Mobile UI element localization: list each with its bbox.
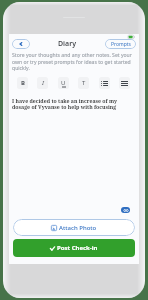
button[interactable]: Text size <box>78 77 89 89</box>
staticText: I <box>42 79 44 87</box>
staticText: Store your thoughts and any other notes.… <box>12 52 136 72</box>
button[interactable]: Attach Photo <box>13 219 135 236</box>
button[interactable]: Italic <box>37 77 48 89</box>
staticText: U <box>61 79 66 87</box>
button[interactable]: Bulleted list <box>99 77 110 89</box>
staticText: Diary <box>58 39 77 49</box>
staticText: T <box>82 79 86 87</box>
button[interactable]: Underline <box>58 77 69 89</box>
button[interactable]: Voice input <box>121 207 130 213</box>
staticText: Attach Photo <box>59 224 97 232</box>
button[interactable]: Bold <box>17 77 28 89</box>
staticText: Post Check-in <box>57 244 98 252</box>
button[interactable]: Numbered list <box>119 77 130 89</box>
button[interactable]: Back <box>12 39 30 49</box>
button[interactable]: Prompts <box>105 39 136 49</box>
staticText: Prompts <box>111 41 131 48</box>
button[interactable]: Post Check-in <box>13 239 135 257</box>
staticText: B <box>21 79 25 87</box>
staticText: I have decided to take an increase of my… <box>12 97 136 111</box>
